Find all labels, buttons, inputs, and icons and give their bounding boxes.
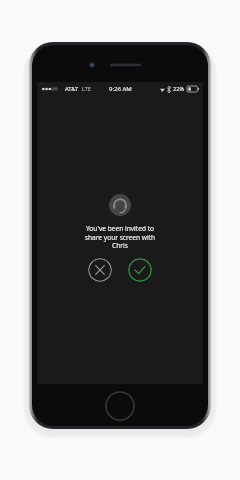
- staticText: LTE: [82, 85, 92, 93]
- other: Home: [105, 391, 135, 421]
- staticText: 9:26 AM: [109, 85, 132, 93]
- staticText: 22%: [173, 85, 185, 93]
- button[interactable]: Accept invitation: [128, 258, 152, 282]
- staticText: AT&T: [65, 85, 79, 93]
- button[interactable]: Decline invitation: [88, 258, 112, 282]
- staticText: You've been invited to share your screen…: [37, 224, 203, 250]
